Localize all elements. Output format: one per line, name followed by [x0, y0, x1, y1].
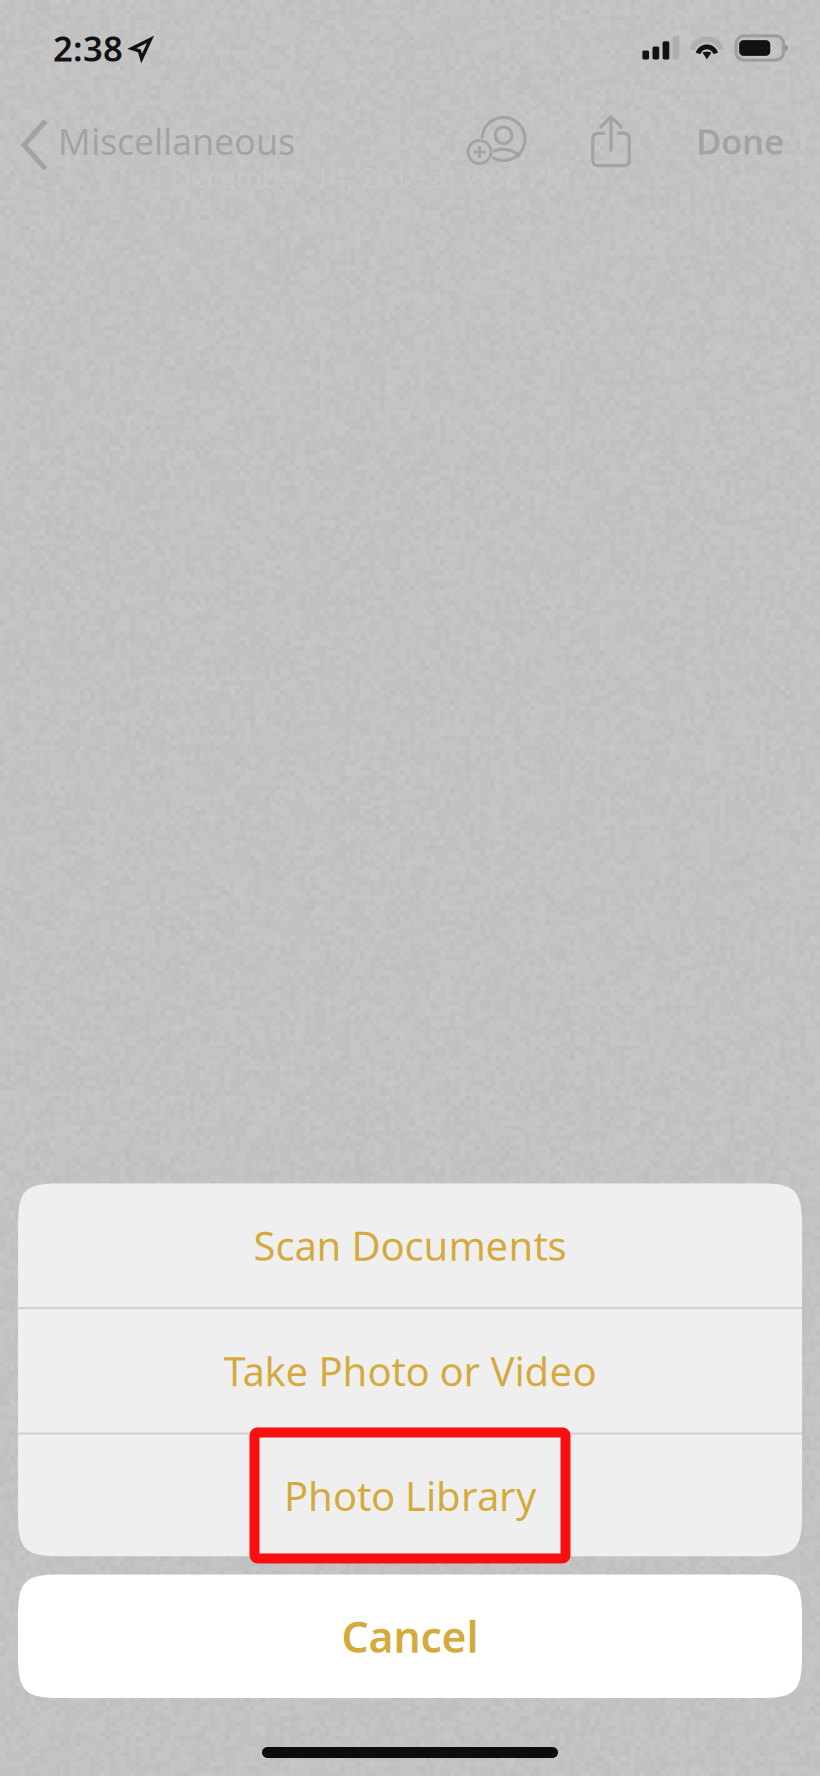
- staticText: Scan Documents: [253, 1219, 566, 1272]
- button[interactable]: Miscellaneous: [0, 96, 309, 186]
- staticText: Photo Library: [284, 1469, 536, 1522]
- staticText: Cancel: [341, 1608, 478, 1665]
- staticText: December 14, 2019 at 2:38 PM: [171, 158, 570, 196]
- staticText: 2:38: [53, 25, 123, 71]
- button[interactable]: Photo Library: [18, 1435, 802, 1556]
- button[interactable]: Done: [645, 96, 820, 186]
- button[interactable]: Cancel: [18, 1574, 802, 1698]
- button[interactable]: Add People: [453, 96, 541, 186]
- staticText: Miscellaneous: [58, 117, 295, 165]
- staticText: Done: [696, 118, 784, 164]
- staticText: Take Photo or Video: [223, 1344, 596, 1397]
- button[interactable]: Share: [577, 96, 645, 186]
- button[interactable]: Take Photo or Video: [18, 1309, 802, 1432]
- button[interactable]: Scan Documents: [18, 1183, 802, 1307]
